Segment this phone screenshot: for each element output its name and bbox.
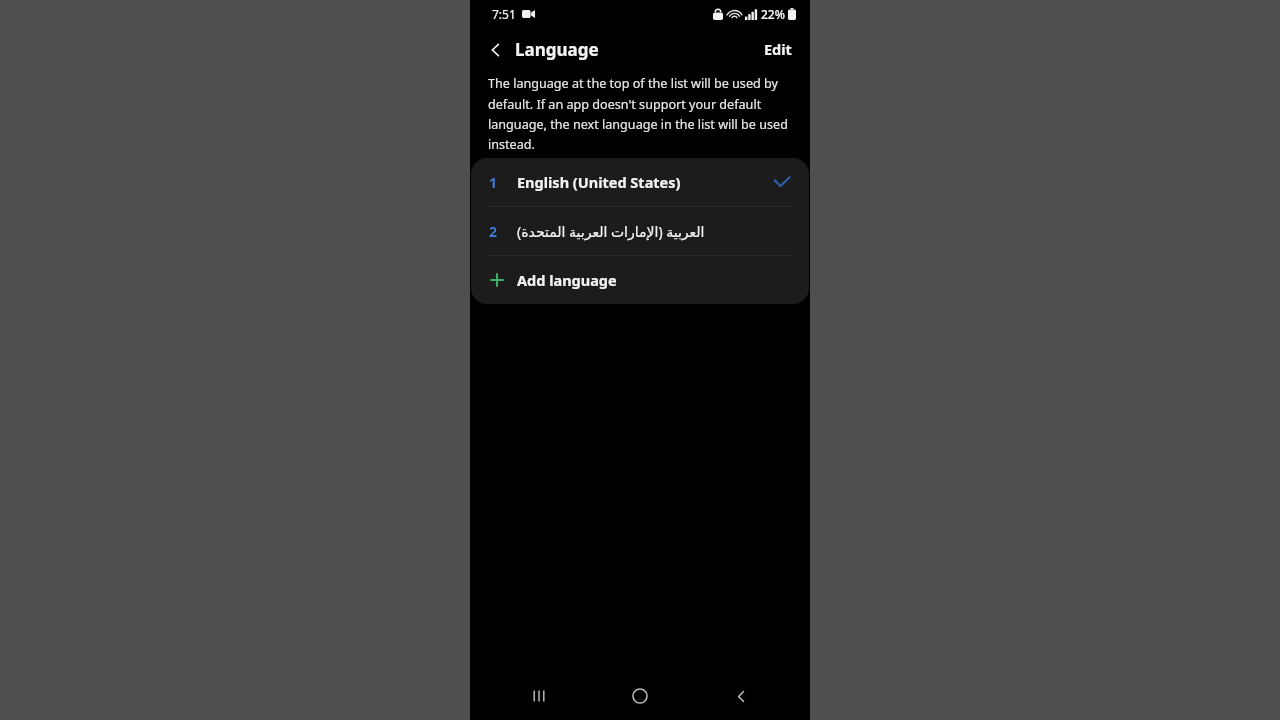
button[interactable]: Back: [470, 32, 607, 67]
button[interactable]: Home: [608, 674, 672, 718]
staticText: Language: [515, 38, 599, 61]
staticText: 22%: [761, 6, 785, 22]
staticText: English (United States): [517, 172, 681, 192]
other: Selected: [771, 171, 793, 193]
button[interactable]: 1: [471, 158, 809, 206]
staticText: Add language: [517, 270, 617, 290]
staticText: The language at the top of the list will…: [488, 75, 794, 152]
staticText: 1: [489, 173, 498, 192]
staticText: (العربية (الإمارات العربية المتحدة: [517, 222, 705, 241]
staticText: Edit: [764, 39, 792, 59]
staticText: 2: [489, 222, 498, 241]
button[interactable]: Recents: [507, 674, 571, 718]
other: Back: [486, 40, 506, 60]
button[interactable]: Back: [709, 674, 773, 718]
button[interactable]: Add language: [471, 256, 809, 304]
button[interactable]: 2: [471, 207, 809, 255]
button[interactable]: Edit: [750, 31, 810, 67]
staticText: 7:51: [492, 6, 516, 22]
